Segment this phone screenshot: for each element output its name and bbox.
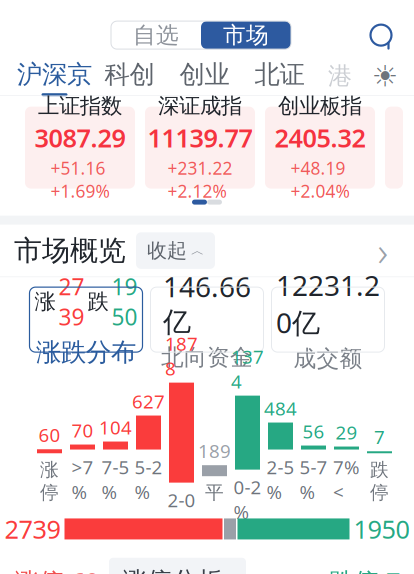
button[interactable]: 科创 — [92, 57, 167, 95]
staticText: 104 — [99, 415, 132, 440]
staticText: 跌停 — [370, 458, 389, 504]
staticText: 跌 — [87, 288, 108, 315]
staticText: 70 — [71, 418, 93, 443]
staticText: 创业板指 — [278, 93, 362, 119]
staticText: 56 — [302, 419, 324, 444]
staticText: 1878 — [165, 331, 198, 381]
staticText: +231.22 +2.12% — [167, 156, 232, 202]
staticText: 146.66亿 — [163, 268, 251, 339]
staticText: 12231.20亿 — [276, 266, 380, 341]
staticText: 收起 — [147, 238, 187, 263]
staticText: 60 — [38, 422, 60, 447]
staticText: 涨停 — [40, 458, 59, 504]
staticText: 5-2% — [134, 454, 162, 504]
staticText: 涨停 60 — [14, 564, 99, 574]
staticText: 7 — [374, 424, 385, 449]
staticText: 2-0% — [167, 488, 195, 537]
staticText: 涨停分析 — [122, 566, 222, 574]
staticText: 自选 — [133, 21, 179, 49]
button[interactable]: 创业 — [167, 57, 242, 95]
staticText: 1374 — [231, 344, 264, 394]
button[interactable]: 146.66亿 — [150, 287, 263, 352]
staticText: 7%< — [333, 454, 360, 504]
button[interactable]: 搜索 — [360, 14, 402, 56]
staticText: 跌停 7 — [329, 564, 400, 574]
staticText: 沪深京 — [17, 59, 92, 90]
staticText: 7-5% — [101, 454, 129, 504]
staticText: ☀ — [372, 59, 398, 93]
staticText: 627 — [132, 389, 165, 414]
staticText: 3087.29 — [34, 121, 125, 154]
staticText: 北向资金 — [161, 343, 253, 371]
staticText: 市场 — [223, 21, 269, 49]
staticText: 1950 — [353, 512, 409, 546]
button[interactable]: 北证 — [242, 57, 317, 95]
staticText: 5-7% — [299, 454, 327, 504]
staticText: 涨 — [34, 288, 55, 315]
button[interactable]: 日间模式 — [363, 57, 407, 95]
button[interactable]: 市场 — [201, 21, 291, 49]
staticText: 平 — [205, 481, 224, 504]
staticText: 2739 — [4, 512, 60, 546]
staticText: 2739 — [58, 271, 84, 332]
staticText: 深证成指 — [158, 93, 242, 119]
button[interactable]: 创业板指 — [265, 107, 375, 189]
staticText: 2405.32 — [274, 121, 365, 154]
staticText: 上证指数 — [38, 93, 122, 119]
staticText: 市场概览 — [14, 233, 126, 268]
staticText: 成交额 — [293, 345, 362, 373]
button[interactable]: 上证指数 — [25, 107, 135, 189]
staticText: 2-5% — [266, 454, 294, 504]
staticText: 创业 — [179, 59, 229, 90]
button[interactable]: 12231.20亿 — [271, 287, 384, 352]
button[interactable]: 更多 — [366, 234, 400, 268]
button[interactable]: 涨停分析 — [109, 558, 246, 574]
staticText: 189 — [198, 438, 231, 463]
button[interactable]: 自选 — [111, 21, 201, 49]
staticText: 484 — [264, 396, 297, 421]
button[interactable]: 收起 — [136, 232, 215, 269]
staticText: 11139.77 — [147, 121, 252, 154]
staticText: 29 — [335, 420, 357, 445]
staticText: ︿ — [191, 242, 204, 259]
staticText: 0-2% — [233, 475, 261, 524]
button[interactable]: 沪深京 — [17, 57, 92, 95]
staticText: +51.16 +1.69% — [50, 156, 109, 202]
staticText: 北证 — [254, 59, 304, 90]
button[interactable]: 涨 — [29, 287, 142, 352]
staticText: › — [377, 224, 388, 277]
button[interactable]: 港 — [317, 57, 363, 95]
staticText: >7% — [71, 454, 93, 504]
staticText: 1950 — [111, 271, 137, 332]
staticText: 科创 — [104, 59, 154, 90]
staticText: 涨跌分布 — [36, 337, 136, 368]
staticText: 港 — [328, 61, 352, 91]
button[interactable]: 深证成指 — [145, 107, 255, 189]
staticText: +48.19 +2.04% — [290, 156, 349, 202]
